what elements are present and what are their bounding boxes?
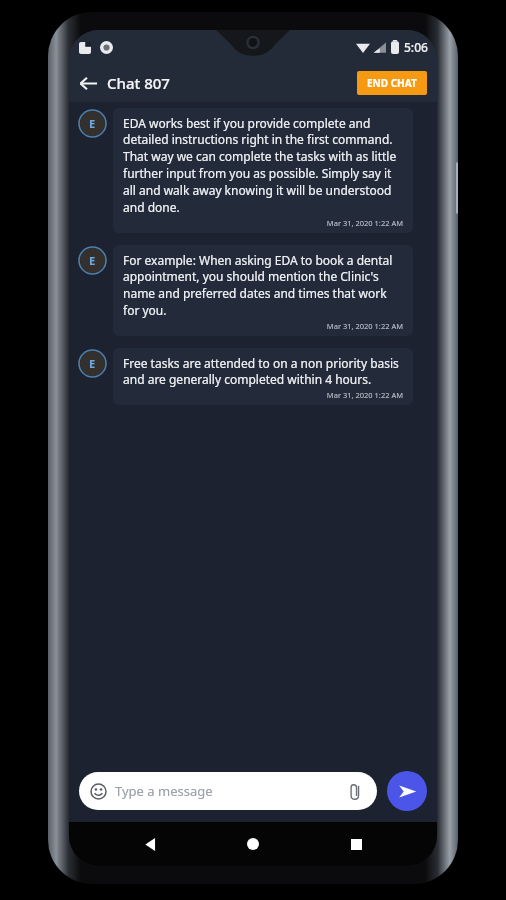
button[interactable]: Free tasks are attended to on a non prio…	[113, 348, 413, 405]
staticText: E	[89, 253, 96, 268]
staticText: 5:06	[404, 39, 428, 55]
button[interactable]: Back	[128, 822, 172, 866]
staticText: Free tasks are attended to on a non prio…	[123, 355, 403, 388]
staticText: EDA works best if you provide complete a…	[123, 115, 403, 216]
staticText: E	[89, 116, 96, 131]
button[interactable]: Home	[231, 822, 275, 866]
button[interactable]: Attach file	[344, 780, 366, 802]
staticText: Type a message	[115, 782, 213, 800]
button[interactable]: Back	[69, 64, 107, 102]
staticText: For example: When asking EDA to book a d…	[123, 252, 403, 319]
button[interactable]: END CHAT	[357, 71, 427, 95]
staticText: Mar 31, 2020 1:22 AM	[326, 390, 403, 400]
staticText: Mar 31, 2020 1:22 AM	[326, 218, 403, 228]
staticText: Chat 807	[107, 73, 170, 93]
staticText: END CHAT	[367, 76, 417, 90]
button[interactable]: Type a message	[79, 772, 377, 810]
button[interactable]: EDA works best if you provide complete a…	[113, 108, 413, 233]
button[interactable]: For example: When asking EDA to book a d…	[113, 245, 413, 336]
staticText: E	[89, 356, 96, 371]
button[interactable]: Recent apps	[334, 822, 378, 866]
staticText: Mar 31, 2020 1:22 AM	[326, 321, 403, 331]
button[interactable]: Send	[387, 771, 427, 811]
